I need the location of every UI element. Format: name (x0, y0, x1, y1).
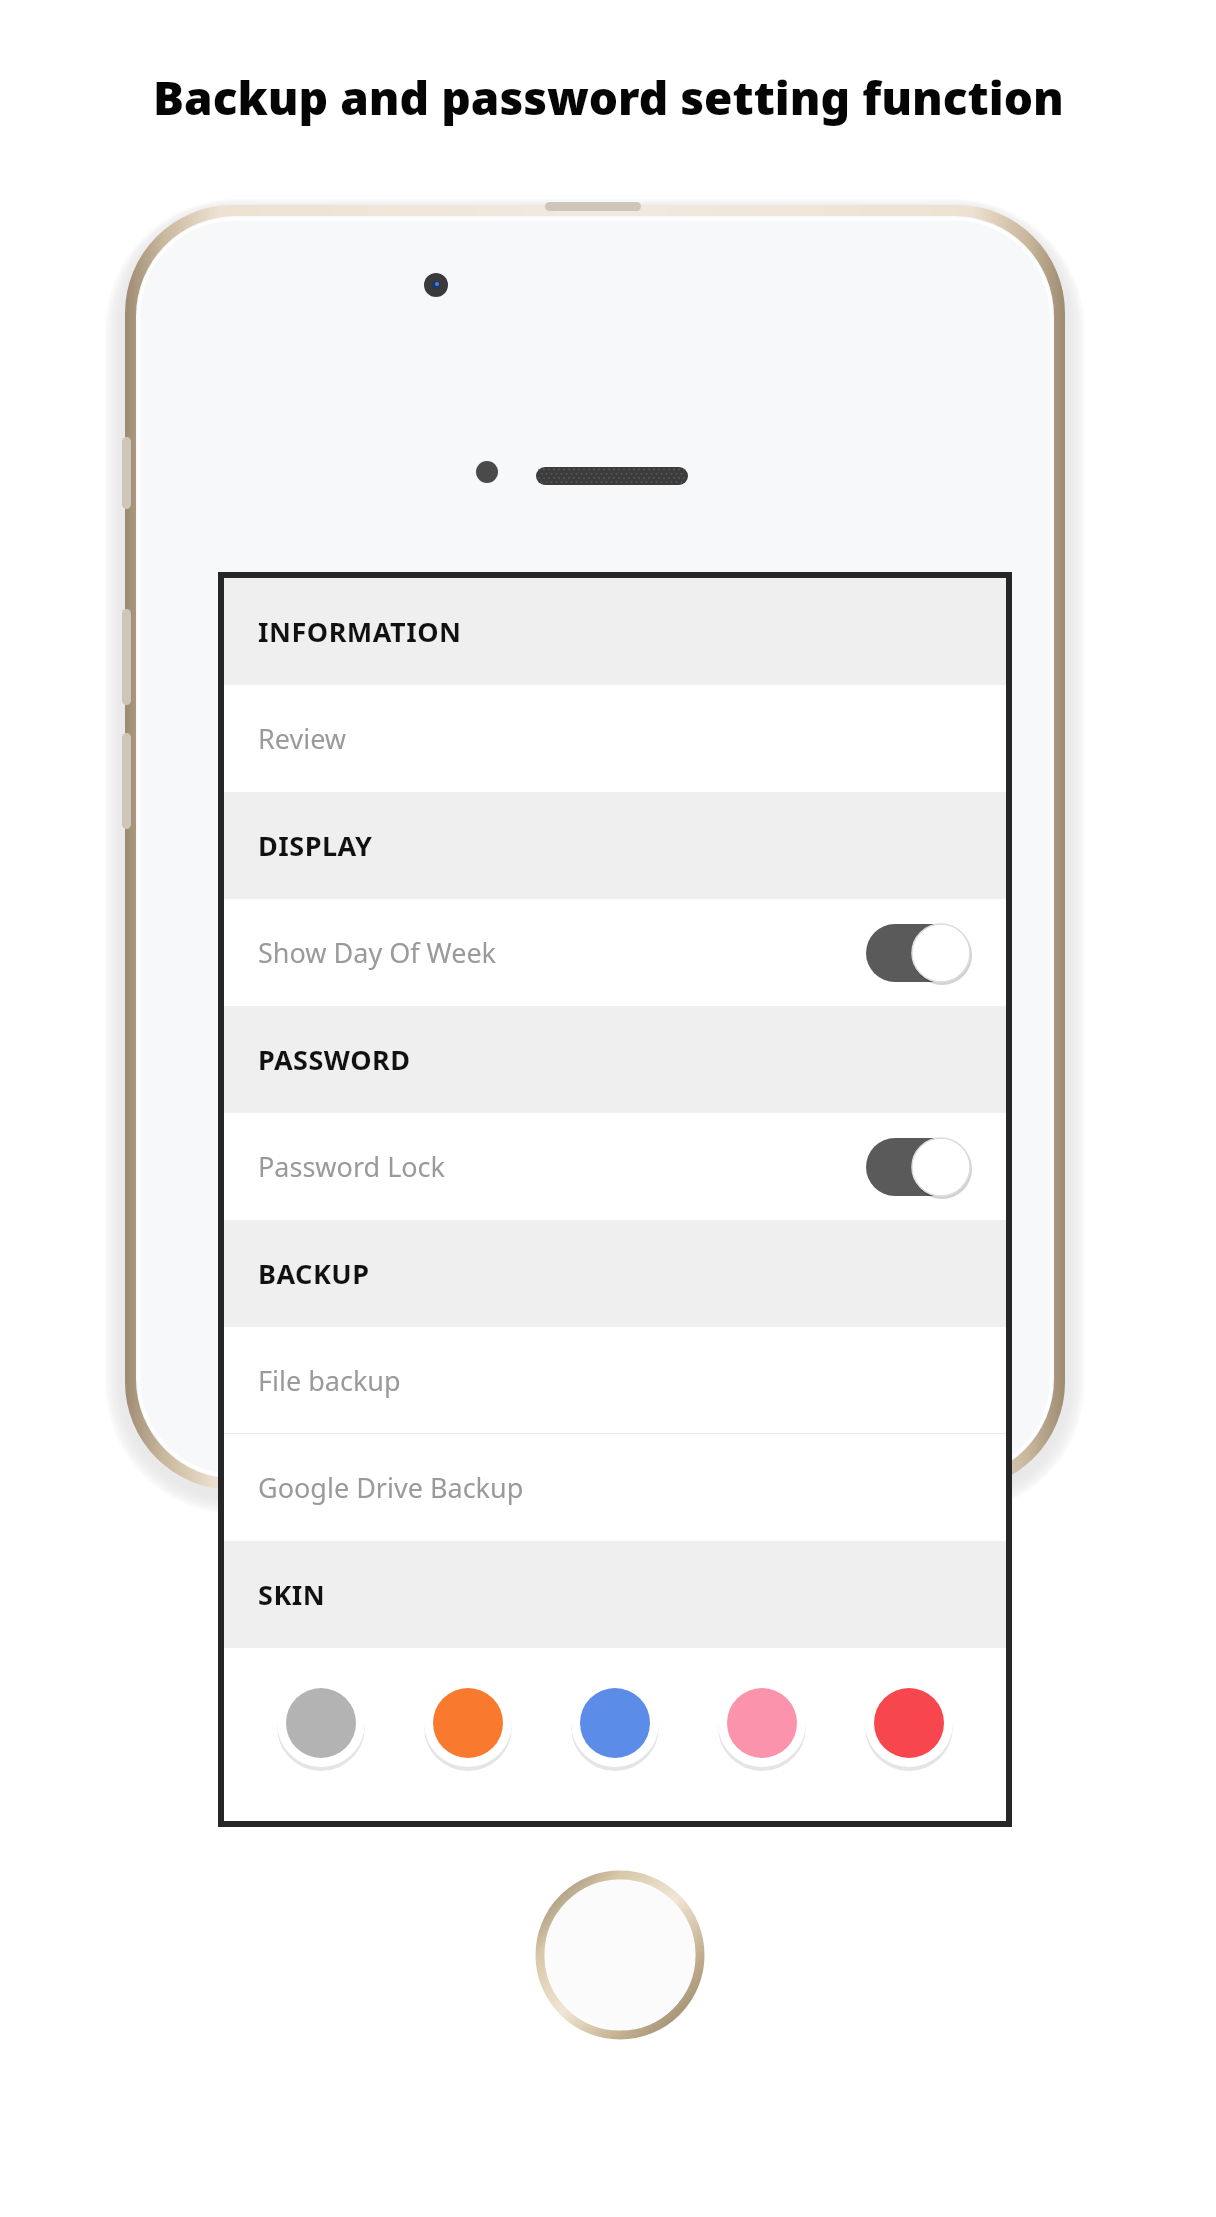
staticText: SKIN (258, 1576, 326, 1613)
staticText: Show Day Of Week (258, 934, 866, 971)
staticText: PASSWORD (258, 1041, 411, 1078)
staticText: INFORMATION (258, 613, 462, 650)
button[interactable]: DISPLAY (224, 792, 1006, 899)
button[interactable]: INFORMATION (224, 578, 1006, 685)
staticText: Password Lock (258, 1148, 866, 1185)
button[interactable]: Skin colour 2 (421, 1676, 515, 1770)
button[interactable]: Skin colour 3 (568, 1676, 662, 1770)
button[interactable]: SKIN (224, 1541, 1006, 1648)
button[interactable]: BACKUP (224, 1220, 1006, 1327)
button[interactable]: Review (224, 685, 1006, 792)
button[interactable]: Skin colour 1 (274, 1676, 368, 1770)
button[interactable]: Toggle (866, 1138, 970, 1196)
staticText: Review (258, 720, 970, 757)
button[interactable]: Skin colour 4 (715, 1676, 809, 1770)
button[interactable]: Password Lock (224, 1113, 1006, 1220)
staticText: File backup (258, 1362, 970, 1399)
staticText: Backup and password setting function (153, 66, 1064, 129)
button[interactable]: Show Day Of Week (224, 899, 1006, 1006)
staticText: Google Drive Backup (258, 1469, 970, 1506)
button[interactable]: Home (538, 1873, 702, 2037)
button[interactable]: Google Drive Backup (224, 1434, 1006, 1541)
button[interactable]: PASSWORD (224, 1006, 1006, 1113)
staticText: DISPLAY (258, 827, 373, 864)
staticText: BACKUP (258, 1255, 370, 1292)
button[interactable]: File backup (224, 1327, 1006, 1434)
button[interactable]: Toggle (866, 924, 970, 982)
button[interactable]: Skin colour 5 (862, 1676, 956, 1770)
